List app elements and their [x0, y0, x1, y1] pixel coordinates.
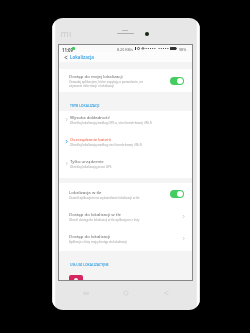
button[interactable]: Tylko urządzenie — [59, 152, 192, 174]
button[interactable] — [170, 190, 184, 198]
other: Back — [63, 55, 68, 60]
staticText: Aplikacje z listy mają dostęp do lokaliz… — [69, 240, 128, 244]
staticText: TRYB LOKALIZACJI — [70, 103, 100, 108]
button[interactable]: Oszczędzanie baterii — [59, 130, 192, 152]
button[interactable]: Dostęp do lokalizacji — [59, 227, 192, 249]
button[interactable]: Menu — [80, 287, 92, 299]
staticText: Określaj lokalizację według GPS-a, sieci… — [70, 121, 153, 125]
staticText: Określaj lokalizację przez GPS — [70, 165, 112, 169]
staticText: 98% — [179, 47, 187, 52]
staticText: Tylko urządzenie — [70, 158, 104, 164]
staticText: USŁUGI LOKALIZACYJNE — [70, 262, 109, 267]
button[interactable]: Dostęp do lokalizacji w tle — [59, 205, 192, 227]
staticText: Wysoka dokładność — [70, 114, 110, 120]
staticText: Zezwalaj aplikacjom, które zapytają o po… — [69, 80, 143, 88]
button[interactable]: Back — [59, 52, 192, 62]
staticText: Określaj lokalizację według sieci komórk… — [70, 143, 143, 147]
staticText: Dostęp do lokalizacji — [69, 233, 111, 239]
staticText: Oszczędzanie baterii — [70, 136, 112, 142]
staticText: Lokalizacja — [70, 54, 94, 60]
button[interactable] — [170, 77, 184, 85]
button[interactable]: Back — [160, 287, 172, 299]
staticText: Dostęp do mojej lokalizacji — [69, 73, 123, 79]
button[interactable]: Dostęp do mojej lokalizacji — [59, 69, 192, 92]
staticText: Zezwól aplikacjom na wyświetlanie lokali… — [69, 196, 140, 200]
button[interactable]: Lokalizacja w tle — [59, 183, 192, 205]
staticText: Określ dostęp do lokalizacji w tle aplik… — [69, 218, 140, 222]
staticText: Dostęp do lokalizacji w tle — [69, 211, 121, 217]
button[interactable] — [69, 275, 83, 280]
button[interactable]: Wysoka dokładność — [59, 108, 192, 130]
button[interactable]: Home — [120, 287, 132, 299]
staticText: 11:09 — [62, 47, 74, 53]
staticText: 8.20 KB/s — [117, 47, 134, 52]
staticText: Lokalizacja w tle — [69, 189, 102, 195]
